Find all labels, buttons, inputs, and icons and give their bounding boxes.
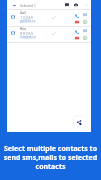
button[interactable]: Call — [74, 13, 80, 19]
button[interactable]: Send SMS — [82, 12, 88, 18]
button[interactable]: Send email — [74, 19, 80, 25]
button[interactable]: Send SMS — [82, 28, 88, 34]
staticText: 12345 — [20, 15, 34, 20]
staticText: Select multiple contacts to send sms,mai… — [2, 144, 99, 171]
staticText: Hira — [20, 27, 26, 31]
button[interactable]: Call — [74, 29, 80, 35]
button[interactable]: Hira — [7, 26, 91, 42]
button[interactable]: Select all — [82, 1, 90, 9]
button[interactable]: Back — [10, 1, 18, 9]
staticText: hira@ab.co — [20, 35, 36, 39]
button[interactable]: Send email — [72, 1, 80, 9]
staticText: gail@ab.co — [20, 19, 36, 23]
button[interactable]: Gail — [7, 10, 91, 26]
staticText: 98765 — [20, 31, 34, 36]
button[interactable]: Send email — [74, 35, 80, 41]
button[interactable]: Share selected contacts — [74, 116, 85, 127]
button[interactable]: Send message — [63, 1, 71, 9]
staticText: Gail — [20, 11, 26, 15]
staticText: Selected 1 — [20, 3, 36, 7]
button[interactable]: WhatsApp — [82, 19, 88, 25]
button[interactable]: WhatsApp — [82, 35, 88, 41]
